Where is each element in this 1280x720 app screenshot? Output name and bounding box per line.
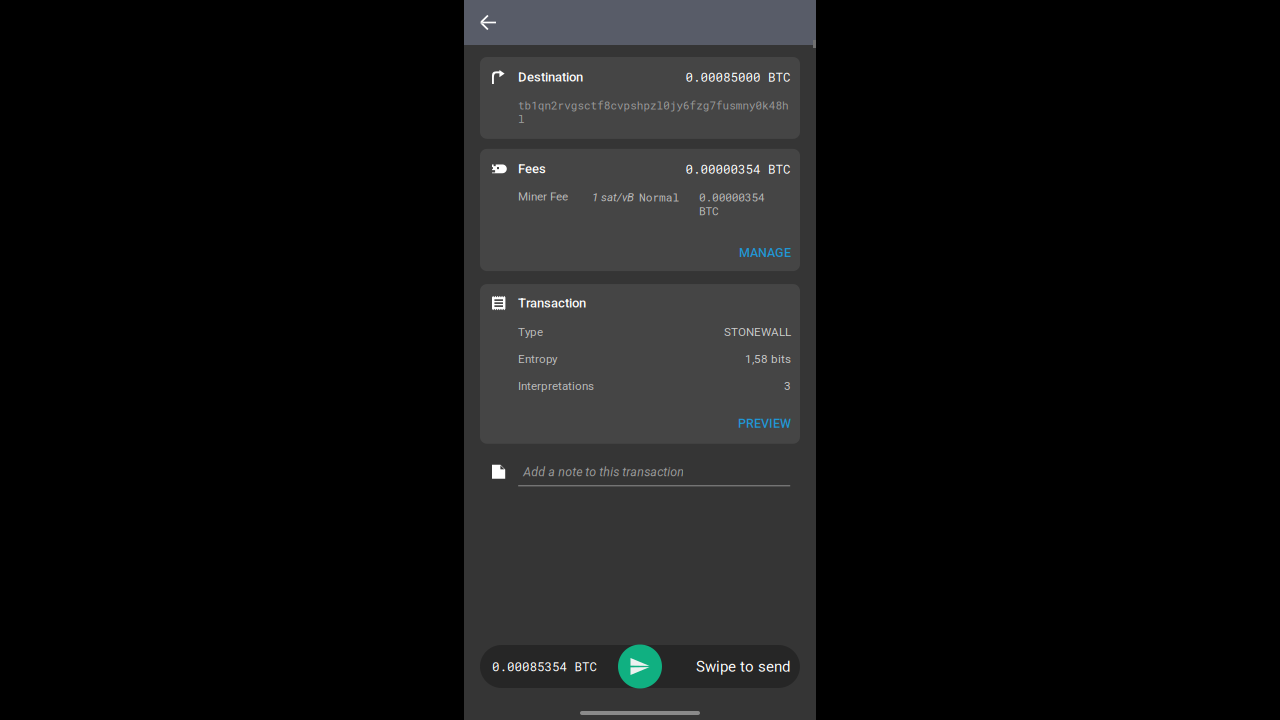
staticText: 3 [784, 379, 791, 393]
staticText: Normal [639, 190, 679, 205]
button[interactable]: PREVIEW [732, 412, 791, 435]
staticText: Interpretations [518, 379, 594, 393]
staticText: Add a note to this transaction [523, 465, 684, 479]
button[interactable]: MANAGE [733, 241, 791, 264]
staticText: Type [518, 325, 543, 339]
button[interactable]: Destination [480, 57, 800, 139]
staticText: MANAGE [739, 245, 791, 260]
staticText: BTC [699, 204, 719, 218]
staticText: l [518, 111, 525, 126]
button[interactable]: Add a note to this transaction [480, 465, 800, 486]
staticText: STONEWALL [724, 325, 791, 339]
staticText: 1,58 bits [745, 352, 791, 366]
staticText: tb1qn2rvgsctf8cvpshpzl0jy6fzg7fusmny0k48… [518, 98, 789, 112]
staticText: Swipe to send [696, 658, 790, 675]
staticText: 1 sat/vB [592, 190, 634, 204]
staticText: Destination [518, 69, 583, 85]
button[interactable]: Back [464, 0, 512, 45]
staticText: PREVIEW [738, 416, 791, 431]
button[interactable]: Send [618, 644, 662, 688]
staticText: 0.00000354 BTC [685, 161, 791, 177]
staticText: Fees [518, 161, 546, 176]
button[interactable]: Fees [480, 149, 800, 271]
staticText: 0.00000354 [699, 190, 765, 205]
staticText: 0.00085000 BTC [685, 69, 791, 85]
staticText: 0.00085354 BTC [492, 658, 597, 675]
staticText: Entropy [518, 352, 557, 366]
button[interactable]: Transaction [480, 284, 800, 444]
staticText: Transaction [518, 295, 586, 311]
staticText: Miner Fee [518, 190, 568, 203]
